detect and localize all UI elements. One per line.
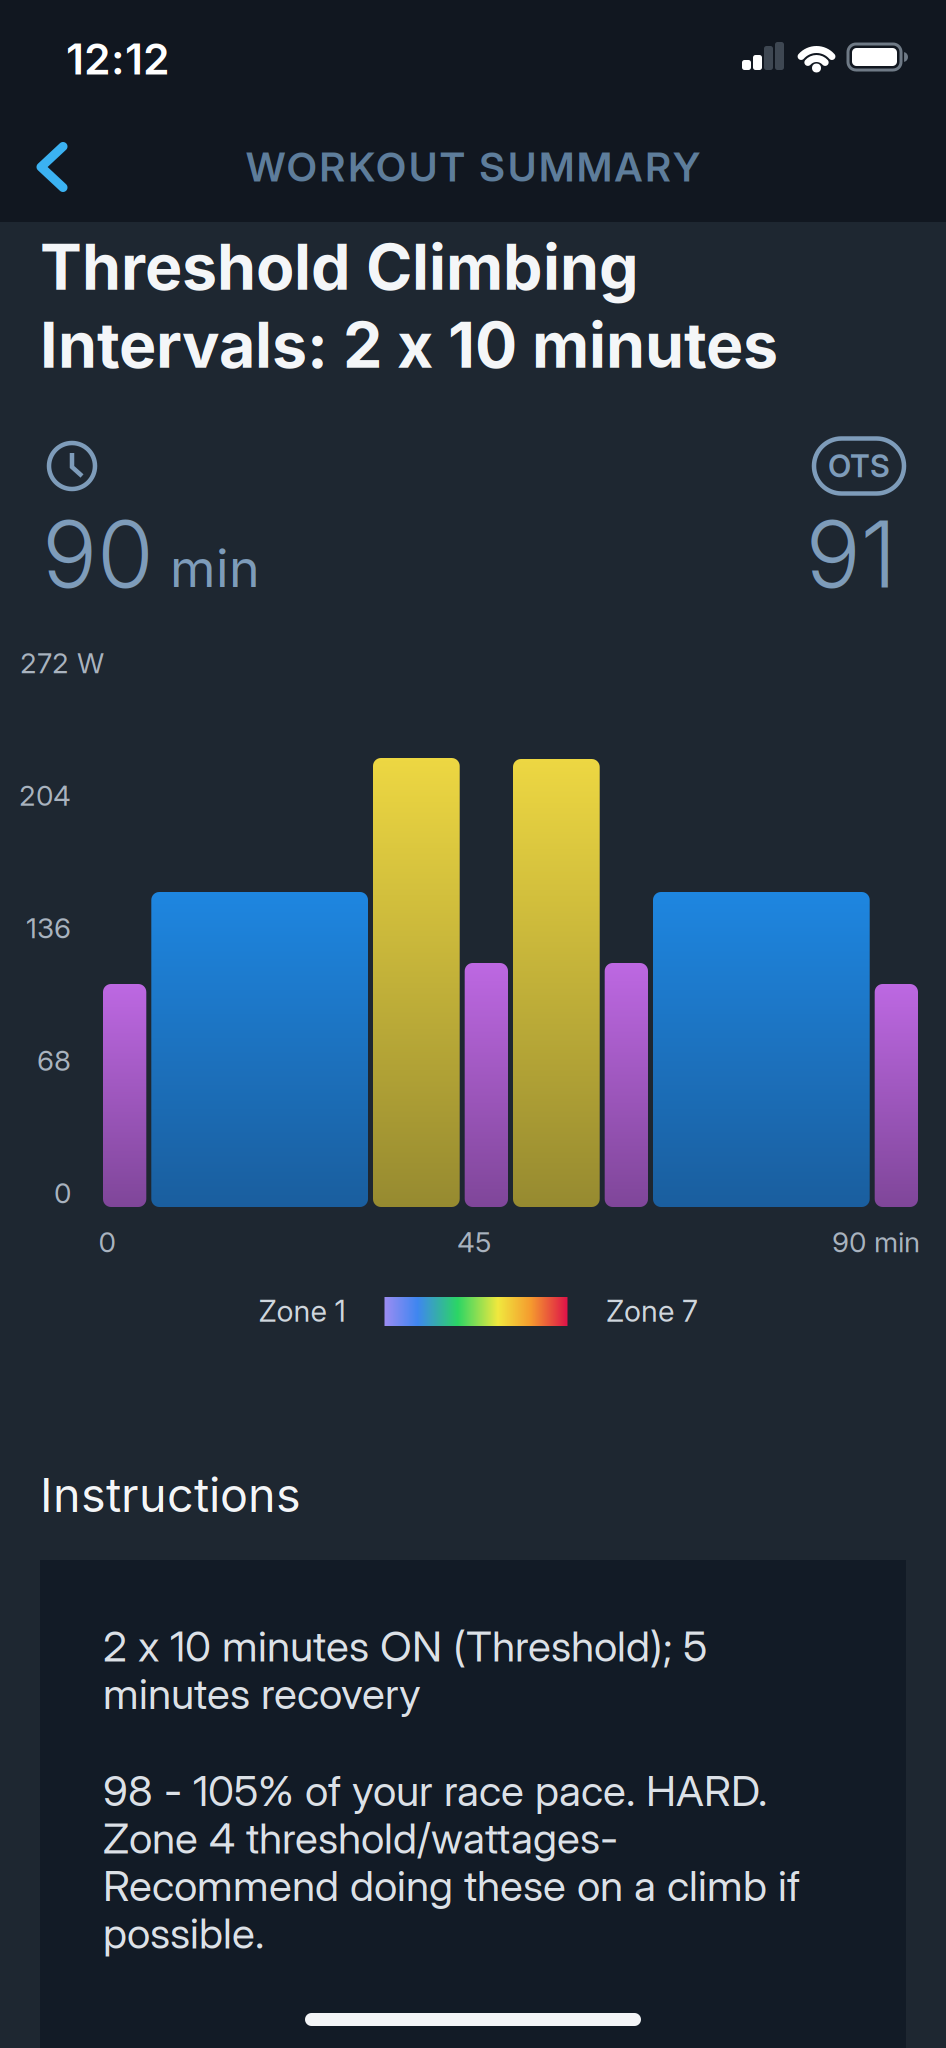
staticText: 90: [42, 500, 154, 608]
staticText: 98 - 105% of your race pace. HARD.: [103, 1765, 767, 1816]
staticText: 90 min: [832, 1225, 920, 1258]
staticText: 0: [54, 1176, 71, 1209]
staticText: Zone 1: [258, 1294, 345, 1328]
staticText: min: [170, 537, 260, 599]
staticText: 12:12: [66, 34, 170, 84]
staticText: minutes recovery: [103, 1668, 421, 1719]
staticText: 91: [805, 500, 896, 608]
staticText: 45: [457, 1225, 491, 1258]
button[interactable]: Back: [36, 142, 68, 192]
staticText: Zone 4 threshold/wattages-: [103, 1812, 618, 1864]
staticText: 0: [98, 1225, 115, 1258]
staticText: Recommend doing these on a climb if: [103, 1860, 800, 1911]
staticText: 204: [19, 779, 71, 812]
staticText: 68: [37, 1044, 71, 1077]
staticText: 272 W: [20, 646, 104, 679]
staticText: Intervals: 2 x 10 minutes: [40, 308, 778, 382]
staticText: Threshold Climbing: [40, 230, 639, 304]
staticText: 136: [26, 911, 71, 944]
staticText: 2 x 10 minutes ON (Threshold); 5: [103, 1620, 707, 1672]
staticText: Zone 7: [606, 1294, 698, 1328]
staticText: OTS: [828, 448, 890, 484]
staticText: WORKOUT SUMMARY: [246, 143, 700, 191]
staticText: possible.: [103, 1907, 264, 1959]
staticText: Instructions: [40, 1467, 301, 1523]
